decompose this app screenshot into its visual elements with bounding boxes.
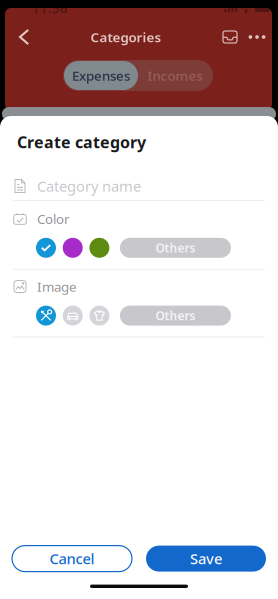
staticText: Categories (90, 28, 161, 46)
button[interactable]: Car icon (63, 306, 83, 326)
staticText: Category name (37, 176, 141, 196)
button[interactable]: Food icon (36, 306, 56, 326)
staticText: Cancel (49, 549, 94, 568)
staticText: Save (190, 549, 222, 568)
button[interactable]: Selected colour (36, 238, 56, 258)
button[interactable]: Others (120, 238, 231, 258)
button[interactable]: Expenses (64, 61, 138, 90)
button[interactable]: Others (120, 306, 231, 326)
staticText: Image (37, 278, 77, 295)
staticText: Others (155, 240, 195, 256)
button[interactable]: Cancel (12, 546, 132, 572)
button[interactable]: Clothing icon (89, 306, 109, 326)
button[interactable]: Colour option (63, 238, 83, 258)
button[interactable]: Save (146, 546, 266, 572)
button[interactable]: Inbox (217, 23, 243, 51)
staticText: Others (155, 308, 195, 323)
button[interactable]: Incomes (138, 61, 212, 90)
button[interactable]: Category name (0, 175, 278, 197)
staticText: 11:56 (32, 0, 68, 17)
staticText: Color (37, 210, 70, 228)
staticText: Create category (17, 131, 146, 153)
staticText: Expenses (72, 67, 130, 84)
button[interactable]: Back (13, 23, 35, 51)
staticText: Incomes (147, 67, 202, 84)
button[interactable]: More options (243, 23, 271, 51)
button[interactable]: Colour option (89, 238, 109, 258)
